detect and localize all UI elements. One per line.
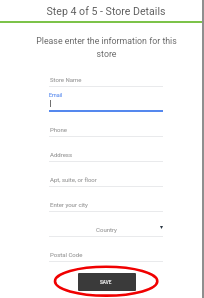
staticText: Phone	[50, 126, 68, 133]
button[interactable]: Apt, suite, or floor	[49, 173, 163, 186]
staticText: Apt, suite, or floor	[50, 176, 97, 183]
button[interactable]: SAVE	[78, 273, 136, 291]
staticText: Store Name	[50, 76, 82, 83]
button[interactable]: Enter your city	[49, 198, 163, 211]
staticText: Step 4 of 5 - Store Details	[4, 5, 204, 17]
staticText: Address	[50, 151, 73, 158]
button[interactable]: Postal Code	[49, 248, 163, 261]
staticText: Postal Code	[50, 251, 83, 258]
staticText: Country	[96, 226, 117, 233]
button[interactable]: Phone	[49, 123, 163, 136]
button[interactable]: Country	[49, 223, 163, 236]
staticText: Email	[49, 92, 63, 98]
button[interactable]: Address	[49, 148, 163, 161]
staticText: Enter your city	[50, 201, 88, 208]
staticText: Please enter the information for this st…	[34, 36, 179, 59]
button[interactable]: Store Name	[49, 73, 163, 86]
staticText: SAVE	[100, 280, 112, 285]
button[interactable]: Email	[49, 92, 163, 110]
other: Open country list	[160, 226, 163, 229]
